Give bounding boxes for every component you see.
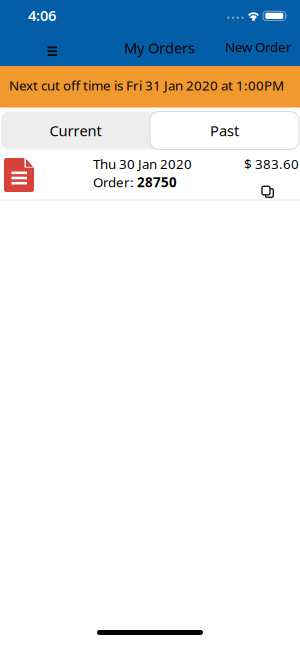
staticText: New Order: [225, 38, 292, 56]
button[interactable]: Copy order: [262, 186, 273, 197]
staticText: $ 383.60: [244, 155, 299, 173]
button[interactable]: New Order: [225, 38, 292, 56]
staticText: Past: [210, 121, 239, 140]
button[interactable]: Menu: [39, 38, 65, 64]
button[interactable]: Past: [150, 111, 299, 149]
staticText: My Orders: [124, 38, 195, 57]
staticText: Thu 30 Jan 2020: [93, 155, 192, 173]
staticText: Order: 28750: [93, 173, 177, 191]
button[interactable]: Thu 30 Jan 2020: [0, 149, 300, 199]
staticText: Current: [49, 121, 101, 140]
staticText: Next cut off time is Fri 31 Jan 2020 at …: [9, 76, 284, 94]
staticText: 4:06: [28, 5, 56, 25]
button[interactable]: Current: [1, 111, 150, 149]
